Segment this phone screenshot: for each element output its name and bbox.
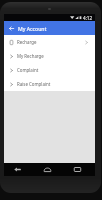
staticText: Raise Complaint <box>17 81 51 87</box>
button[interactable]: Complaint <box>4 63 95 77</box>
staticText: My Recharge <box>17 53 44 59</box>
button[interactable]: Recents <box>71 163 84 176</box>
button[interactable]: My Recharge <box>4 49 95 63</box>
staticText: Recharge <box>17 39 37 45</box>
button[interactable]: Home <box>41 163 54 176</box>
button[interactable]: Raise Complaint <box>4 77 95 91</box>
staticText: My Account <box>18 25 47 32</box>
button[interactable]: Recharge <box>4 35 95 49</box>
staticText: 4:12 <box>83 15 93 21</box>
button[interactable]: Back <box>11 163 24 176</box>
button[interactable]: Back <box>4 21 18 35</box>
staticText: Complaint <box>17 67 39 73</box>
